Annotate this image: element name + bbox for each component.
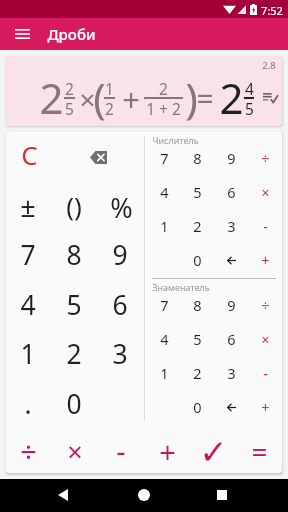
button[interactable]: - (248, 210, 282, 242)
button[interactable] (6, 56, 282, 126)
staticText: 8 (193, 295, 202, 315)
button[interactable]: = (236, 428, 282, 473)
button[interactable]: 7 (147, 289, 181, 321)
staticText: Дроби (47, 24, 96, 44)
staticText: 5 (193, 329, 202, 349)
button[interactable]: Show full result (257, 87, 283, 109)
staticText: 7 (160, 148, 169, 168)
button[interactable]: - (248, 357, 282, 389)
staticText: ÷ (20, 432, 37, 471)
staticText: ÷ (261, 295, 270, 315)
button[interactable]: 8 (51, 231, 97, 279)
button[interactable]: . (5, 380, 51, 428)
button[interactable]: 4 (5, 281, 51, 329)
button[interactable]: Backspace denominator (214, 391, 248, 423)
staticText: ÷ (261, 148, 270, 168)
staticText: 2 (193, 363, 202, 383)
button[interactable]: 8 (180, 142, 214, 174)
button[interactable]: 7 (5, 231, 51, 279)
button[interactable]: 3 (214, 210, 248, 242)
staticText: 4 (160, 329, 169, 349)
button[interactable]: 2 (180, 210, 214, 242)
button[interactable]: 9 (214, 142, 248, 174)
staticText: 4 (245, 78, 254, 99)
button[interactable]: 3 (97, 330, 143, 378)
staticText: 2 (219, 69, 244, 126)
button[interactable]: × (248, 323, 282, 355)
staticText: 5 (245, 98, 254, 119)
staticText: 8 (193, 148, 202, 168)
staticText: = (251, 432, 268, 470)
button[interactable]: ÷ (248, 142, 282, 174)
staticText: - (263, 363, 268, 383)
staticText: 1 + 2 (146, 98, 181, 119)
button[interactable]: 9 (214, 289, 248, 321)
button[interactable]: Recent apps (208, 481, 236, 509)
button[interactable]: 6 (214, 323, 248, 355)
button[interactable]: 0 (180, 244, 214, 276)
button[interactable]: 4 (147, 176, 181, 208)
staticText: + (159, 432, 176, 471)
button[interactable]: % (98, 184, 144, 230)
button[interactable]: 6 (97, 281, 143, 329)
button[interactable]: + (248, 391, 282, 423)
staticText: × (67, 433, 83, 470)
button[interactable]: Back (49, 481, 77, 509)
staticText: Знаменатель (152, 281, 210, 293)
button[interactable]: Open navigation menu (9, 21, 35, 47)
button[interactable]: 7 (147, 142, 181, 174)
button[interactable]: 1 (147, 357, 181, 389)
button[interactable]: 2 (51, 330, 97, 378)
staticText: 1 (160, 216, 169, 236)
staticText: × (261, 329, 270, 349)
button[interactable]: 1 (5, 330, 51, 378)
button[interactable]: 1 (147, 210, 181, 242)
button[interactable]: 6 (214, 176, 248, 208)
button[interactable]: ✓ (190, 429, 236, 474)
staticText: = (196, 78, 214, 119)
staticText: 0 (193, 397, 202, 417)
staticText: 9 (112, 237, 128, 273)
staticText: 3 (227, 363, 236, 383)
staticText: ± (20, 188, 36, 225)
button[interactable]: ÷ (248, 289, 282, 321)
button[interactable]: × (248, 176, 282, 208)
button[interactable]: × (52, 429, 98, 474)
button[interactable]: C (6, 131, 52, 177)
button[interactable]: 5 (180, 176, 214, 208)
button[interactable]: + (248, 244, 282, 276)
button[interactable]: ÷ (5, 429, 51, 474)
staticText: 6 (227, 182, 236, 202)
button[interactable]: 4 (147, 323, 181, 355)
button[interactable]: 3 (214, 357, 248, 389)
staticText: 2 (159, 78, 168, 99)
button[interactable]: () (51, 182, 97, 228)
button[interactable]: 0 (51, 380, 97, 428)
button[interactable]: Backspace numerator (214, 244, 248, 276)
button[interactable]: 0 (180, 391, 214, 423)
staticText: 0 (66, 386, 82, 422)
staticText: 4 (20, 287, 36, 323)
staticText: 3 (112, 336, 128, 372)
button[interactable]: 8 (180, 289, 214, 321)
button[interactable]: 5 (51, 281, 97, 329)
button[interactable]: 2 (180, 357, 214, 389)
button[interactable]: Home (130, 481, 158, 509)
button[interactable]: 5 (180, 323, 214, 355)
staticText: × (79, 80, 96, 118)
staticText: . (24, 386, 32, 422)
button[interactable]: 9 (97, 231, 143, 279)
staticText: 4 (160, 182, 169, 202)
staticText: 7 (20, 237, 36, 273)
staticText: 2 (39, 69, 64, 126)
staticText: C (21, 137, 38, 172)
staticText: 3 (227, 216, 236, 236)
staticText: + (122, 78, 140, 120)
button[interactable]: Backspace (75, 134, 121, 180)
staticText: 2 (105, 98, 114, 119)
button[interactable]: - (98, 428, 144, 473)
button[interactable]: + (144, 429, 190, 474)
button[interactable]: ± (5, 183, 51, 229)
staticText: 1 (105, 78, 114, 99)
staticText: 1 (20, 336, 36, 372)
